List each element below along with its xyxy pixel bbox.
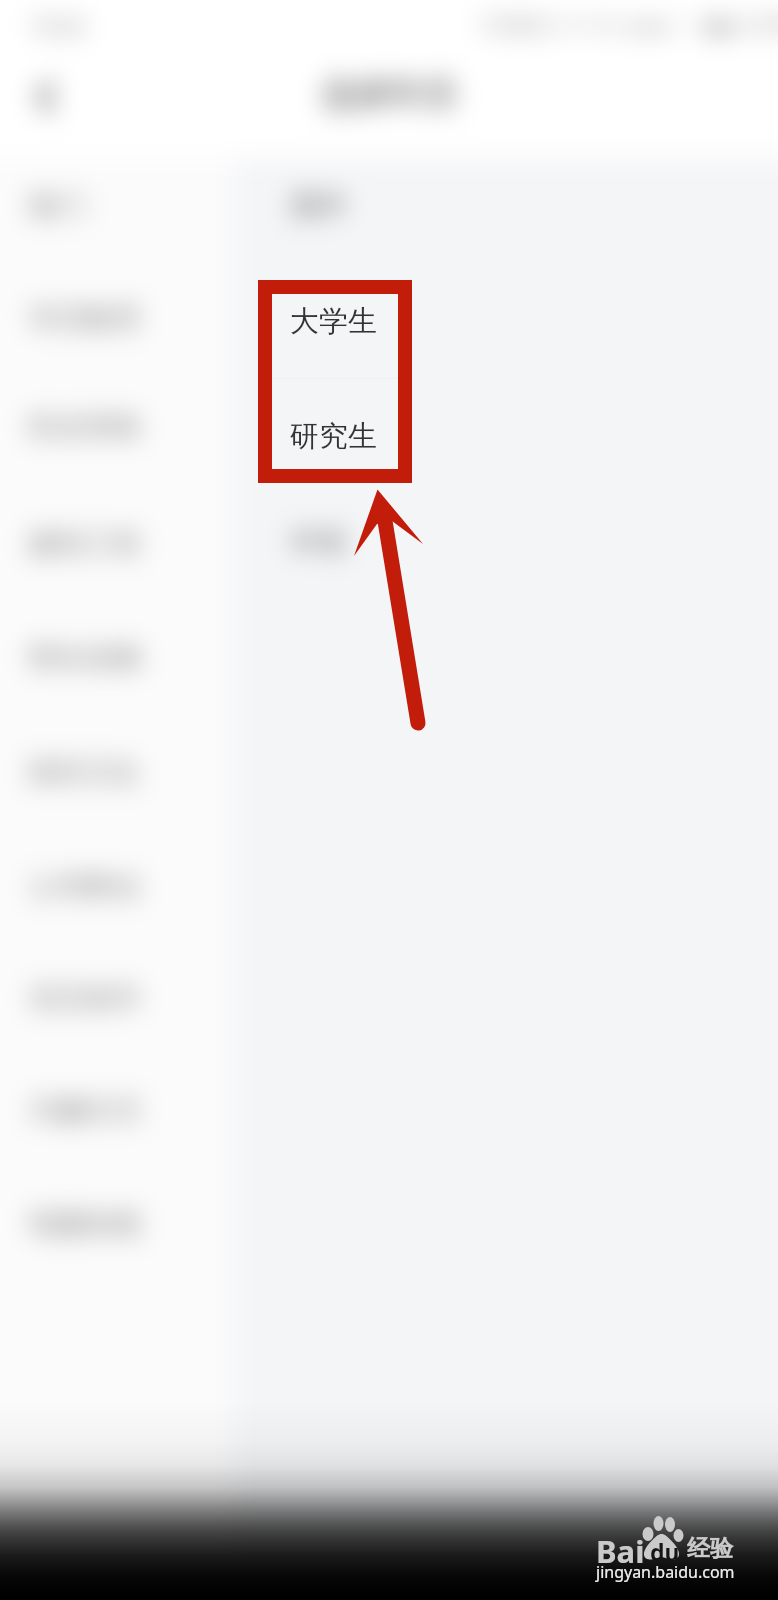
staticText: 研究生 bbox=[291, 419, 375, 454]
button[interactable]: 热门 bbox=[0, 149, 234, 261]
staticText: 研究生 bbox=[291, 419, 375, 454]
staticText: 热门 bbox=[29, 188, 85, 223]
staticText: 中专 bbox=[291, 525, 347, 560]
staticText: 大学生 bbox=[291, 304, 375, 339]
button[interactable]: 高中 bbox=[234, 149, 778, 261]
staticText: 兴趣生活 bbox=[29, 1092, 141, 1127]
staticText: 学历教育 bbox=[29, 301, 141, 336]
staticText: 大学生 bbox=[291, 304, 375, 339]
staticText: 电脑技能 bbox=[29, 1206, 141, 1241]
staticText: 公考事业 bbox=[29, 869, 141, 904]
button[interactable]: 职业资格 bbox=[0, 370, 234, 482]
staticText: Bai bbox=[596, 1530, 645, 1572]
staticText: 职业资格 bbox=[29, 409, 141, 444]
staticText: jingyan.baidu.com bbox=[596, 1561, 735, 1583]
staticText: 职业资格 bbox=[29, 409, 141, 444]
staticText: 建筑工程 bbox=[29, 526, 141, 561]
button[interactable]: 建筑工程 bbox=[0, 487, 234, 599]
staticText: 经验 bbox=[687, 1534, 733, 1563]
staticText: 电脑技能 bbox=[29, 1206, 141, 1241]
button[interactable]: 学历教育 bbox=[0, 262, 234, 374]
button[interactable]: 兴趣生活 bbox=[0, 1053, 234, 1165]
staticText: 财会金融 bbox=[29, 639, 141, 674]
staticText: 研究生 bbox=[290, 418, 377, 455]
staticText: 高中 bbox=[291, 188, 347, 223]
staticText: 大学生 bbox=[290, 303, 377, 340]
staticText: 语言留学 bbox=[29, 981, 141, 1016]
staticText: 选择学历 bbox=[321, 73, 457, 116]
button[interactable]: 财会金融 bbox=[0, 600, 234, 712]
button[interactable]: 电脑技能 bbox=[0, 1167, 234, 1279]
staticText: 热门 bbox=[29, 188, 85, 223]
button[interactable]: 研究生 bbox=[234, 380, 778, 492]
staticText: 医药卫生 bbox=[29, 755, 141, 790]
staticText: du bbox=[650, 1536, 680, 1567]
staticText: 兴趣生活 bbox=[29, 1092, 141, 1127]
staticText: 财会金融 bbox=[29, 639, 141, 674]
staticText: 中国移动 ☰ 4G ▰▰▰ ⚡ ▮▮▮ 82% bbox=[479, 12, 778, 38]
staticText: 医药卫生 bbox=[29, 755, 141, 790]
staticText: 高中 bbox=[291, 188, 347, 223]
staticText: 学历教育 bbox=[29, 301, 141, 336]
button[interactable]: 中专 bbox=[234, 486, 778, 598]
staticText: 公考事业 bbox=[29, 869, 141, 904]
button[interactable]: 语言留学 bbox=[0, 942, 234, 1054]
button[interactable]: 大学生 bbox=[234, 265, 778, 377]
staticText: 中专 bbox=[291, 525, 347, 560]
button[interactable]: Back bbox=[16, 66, 78, 128]
button[interactable]: 公考事业 bbox=[0, 830, 234, 942]
staticText: 语言留学 bbox=[29, 981, 141, 1016]
button[interactable]: 医药卫生 bbox=[0, 716, 234, 828]
staticText: 建筑工程 bbox=[29, 526, 141, 561]
